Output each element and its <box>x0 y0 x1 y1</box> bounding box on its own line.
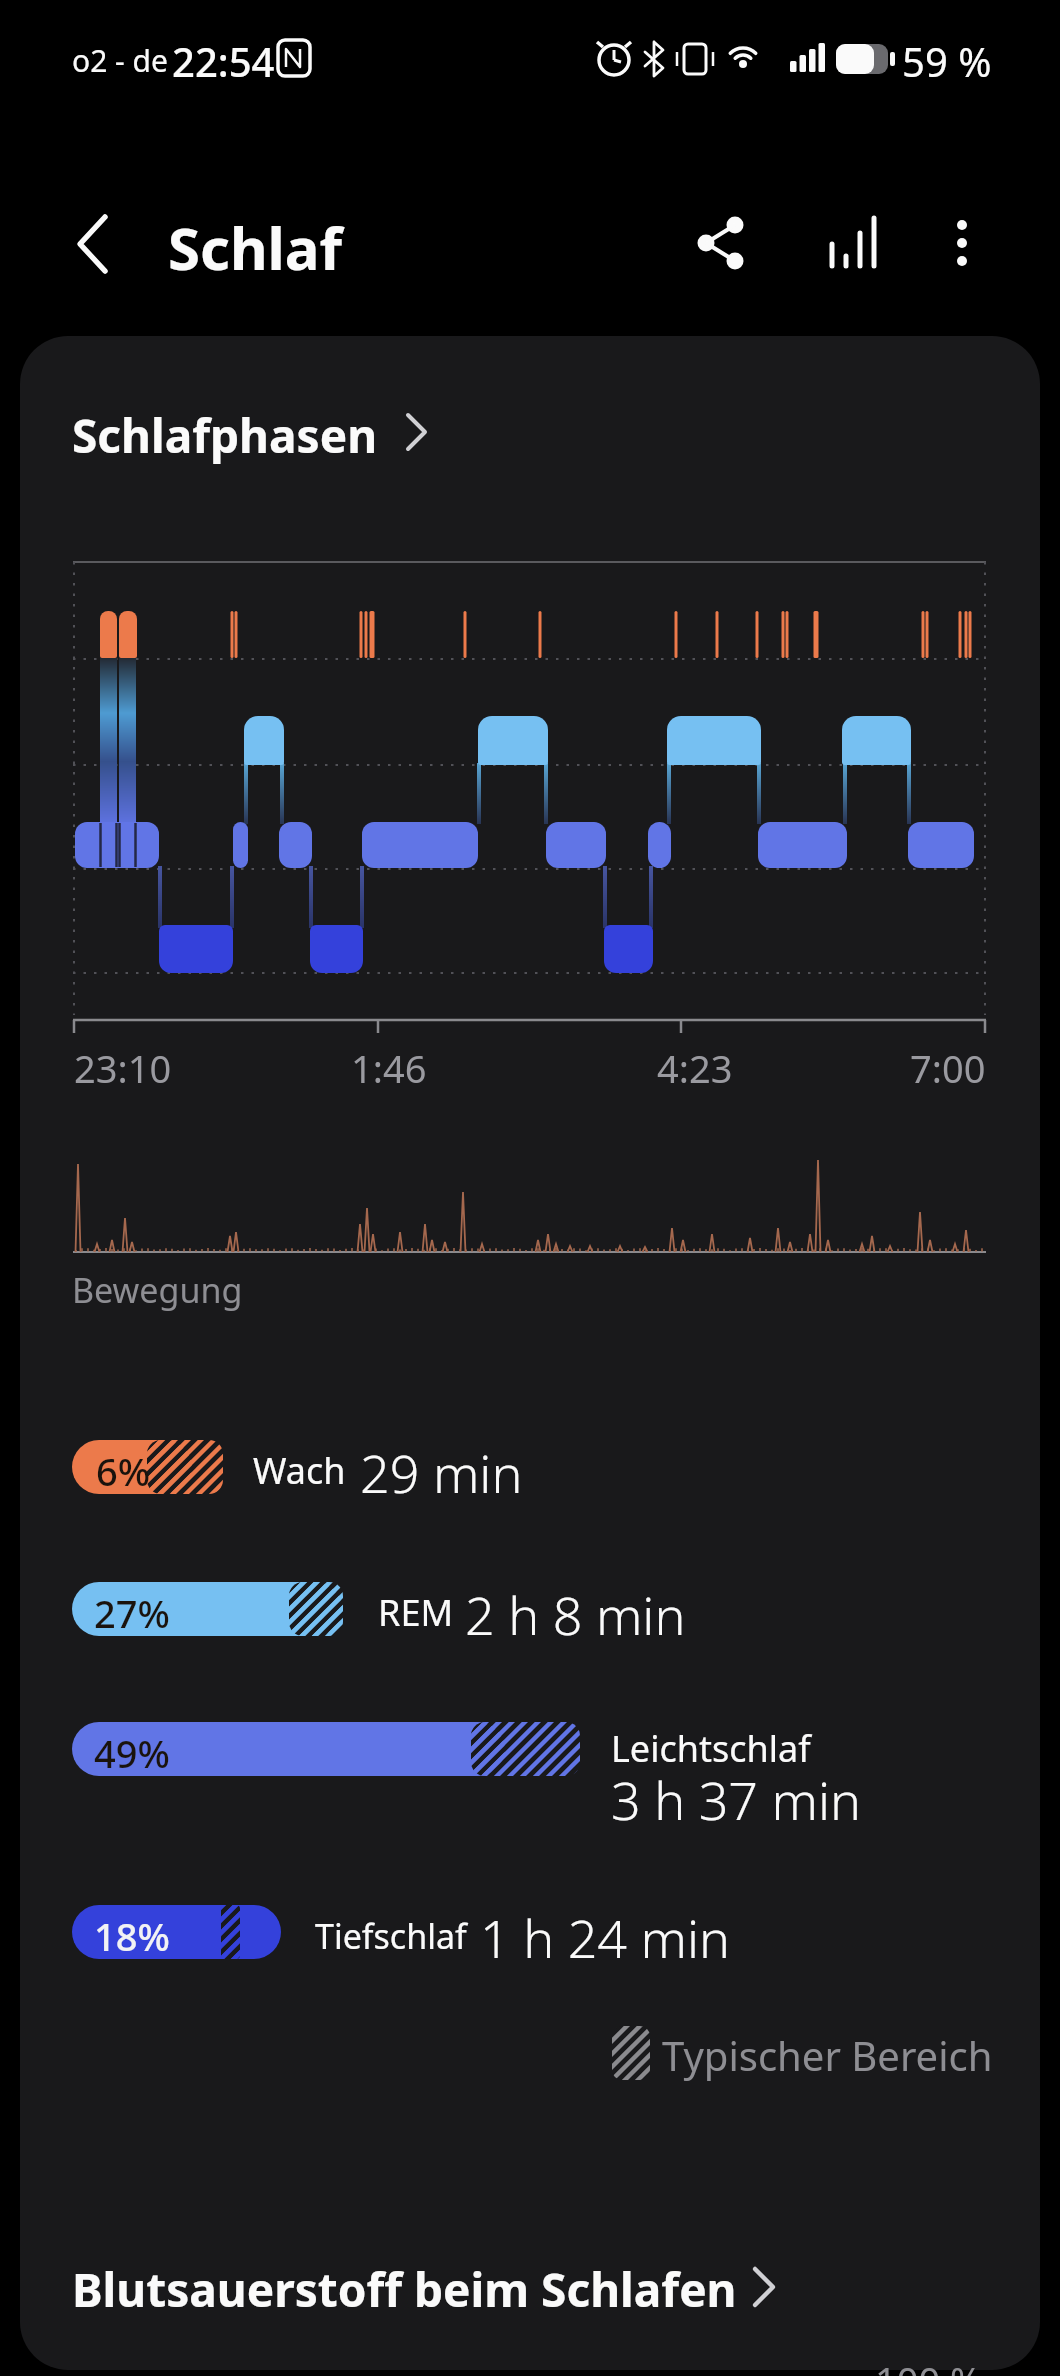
staticText: Tiefschlaf <box>315 1913 467 1959</box>
button[interactable] <box>60 396 440 470</box>
staticText: o2 - de <box>72 40 168 81</box>
button[interactable] <box>810 200 898 288</box>
staticText: REM <box>378 1588 454 1637</box>
staticText: 29 min <box>360 1437 523 1508</box>
button[interactable] <box>920 200 1006 288</box>
staticText: Bewegung <box>72 1267 243 1313</box>
staticText: Typischer Bereich <box>662 2028 993 2082</box>
staticText: Wach <box>253 1446 346 1495</box>
staticText: Schlafphasen <box>72 404 378 467</box>
staticText: 1 h 24 min <box>480 1902 731 1973</box>
staticText: 59 % <box>902 34 992 88</box>
staticText: Schlaf <box>168 208 343 287</box>
staticText: 3 h 37 min <box>611 1764 862 1835</box>
staticText: 6% <box>96 1445 151 1497</box>
button[interactable] <box>56 200 146 290</box>
staticText: 100 % <box>875 2354 982 2376</box>
button[interactable] <box>676 200 764 288</box>
staticText: 49% <box>94 1727 170 1779</box>
staticText: 2 h 8 min <box>465 1579 686 1650</box>
button[interactable] <box>60 2244 790 2330</box>
staticText: Blutsauerstoff beim Schlafen <box>72 2258 737 2321</box>
staticText: 1:46 <box>351 1042 427 1094</box>
staticText: 18% <box>94 1910 170 1962</box>
staticText: 23:10 <box>74 1042 172 1094</box>
staticText: Leichtschlaf <box>611 1724 811 1773</box>
staticText: 27% <box>94 1587 170 1639</box>
staticText: 4:23 <box>657 1042 733 1094</box>
staticText: 22:54 <box>172 34 275 88</box>
staticText: 7:00 <box>910 1042 986 1094</box>
